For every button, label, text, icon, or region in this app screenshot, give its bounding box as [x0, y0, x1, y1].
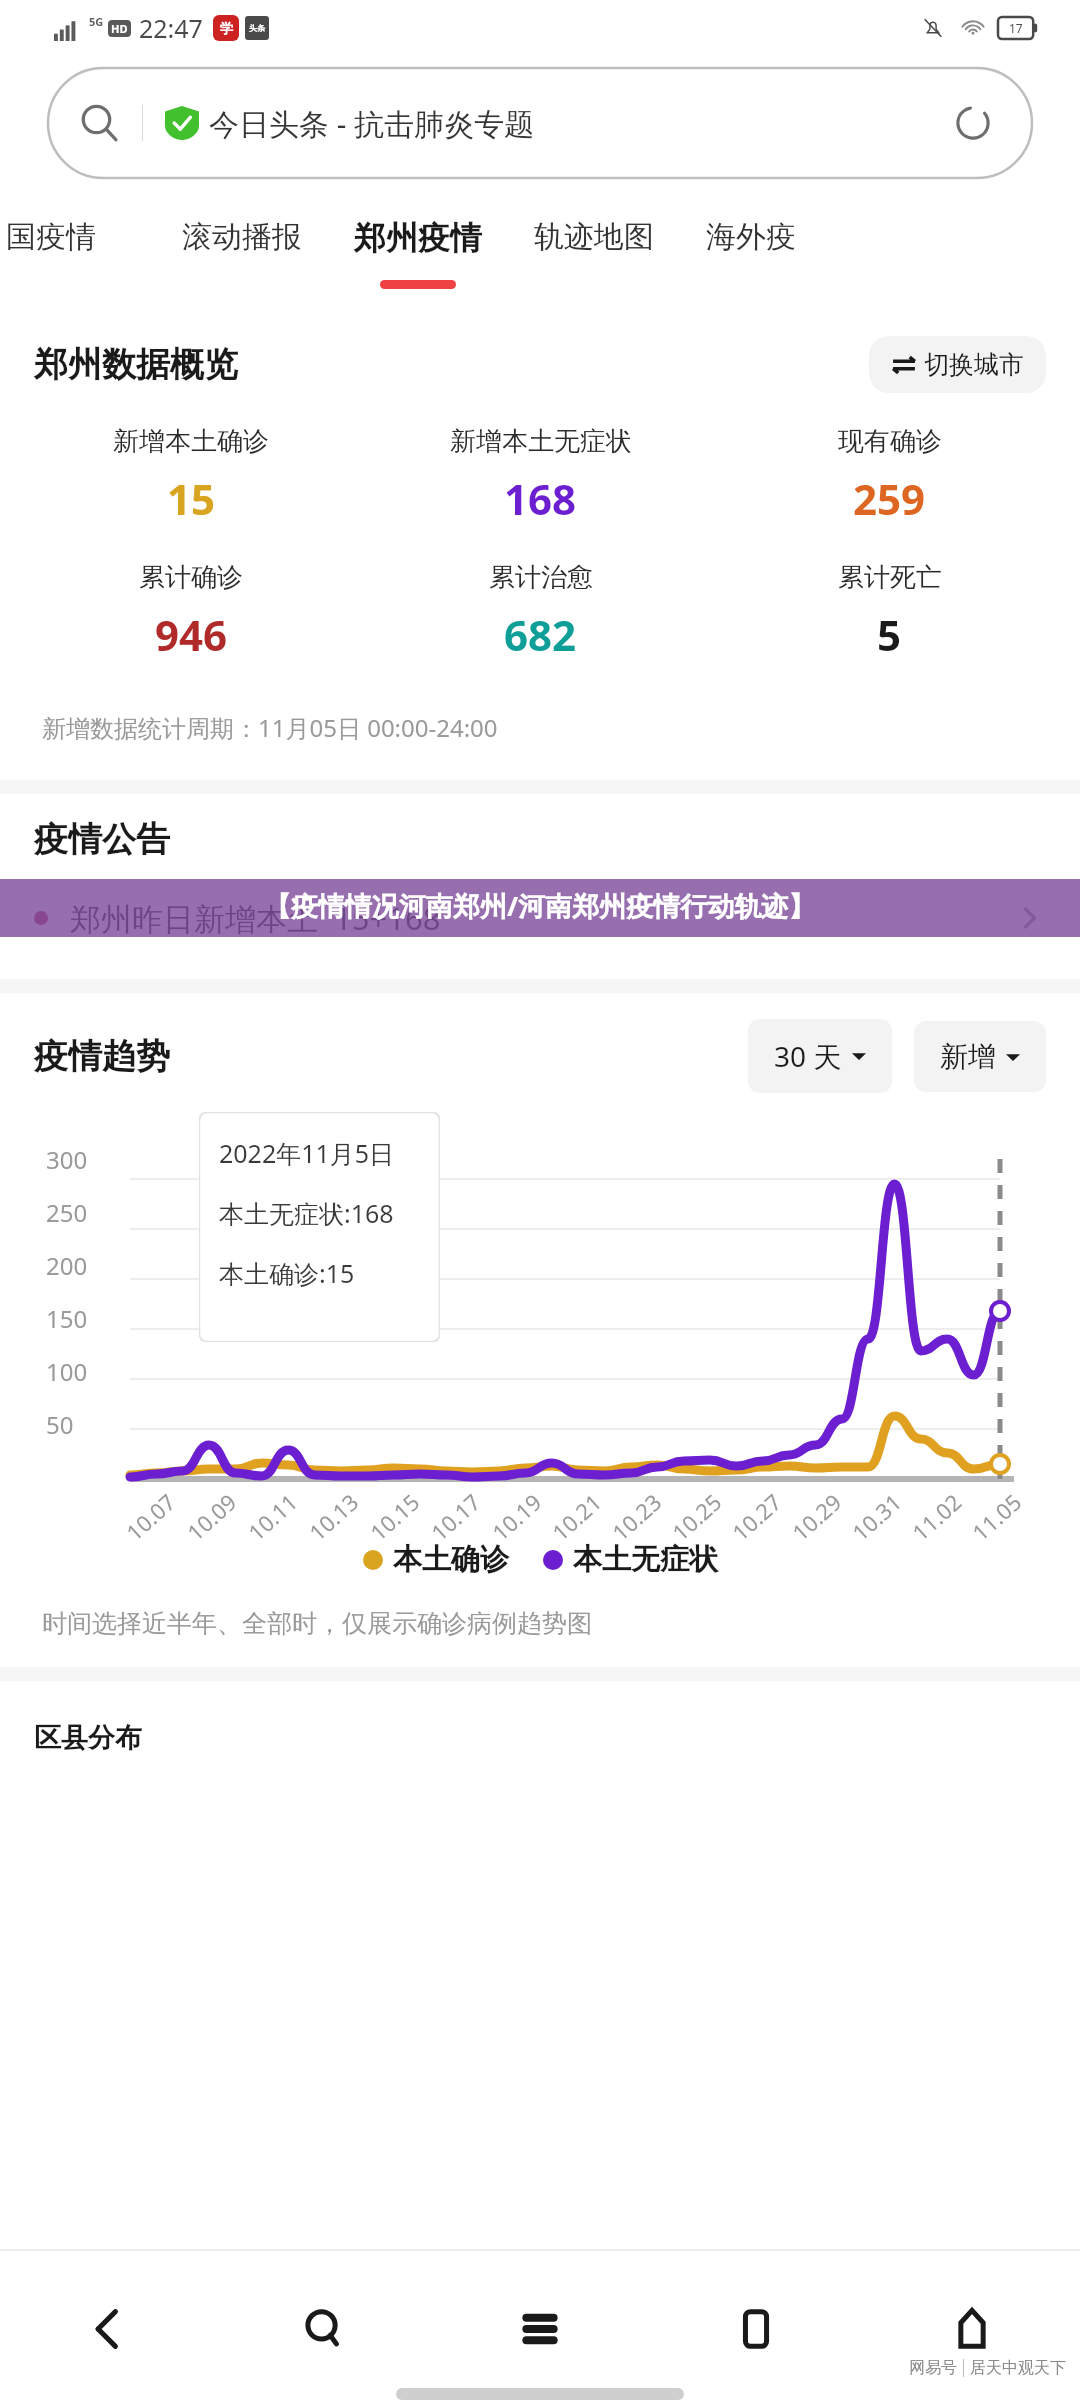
staticText: 10.23 — [605, 1486, 668, 1547]
staticText: 682 — [504, 606, 577, 663]
button[interactable]: 30 天 — [748, 1019, 892, 1093]
staticText: 新增 — [940, 1039, 996, 1074]
button[interactable]: Menu — [432, 2284, 648, 2374]
staticText: 居天中观天下 — [970, 2358, 1066, 2378]
button[interactable]: 郑州昨日新增本土 15+168 — [0, 883, 1080, 953]
button[interactable]: Back — [0, 2284, 216, 2374]
staticText: 300 — [46, 1143, 88, 1176]
staticText: 10.09 — [180, 1486, 243, 1547]
staticText: 新增本土确诊 — [113, 425, 269, 458]
staticText: 时间选择近半年、全部时，仅展示确诊病例趋势图 — [42, 1608, 592, 1639]
staticText: 168 — [504, 470, 577, 527]
staticText: HD — [111, 21, 128, 36]
staticText: 150 — [46, 1302, 88, 1335]
staticText: 今日头条 - 抗击肺炎专题 — [209, 103, 535, 144]
button[interactable]: 累计确诊 — [16, 561, 366, 663]
button[interactable]: 新增本土无症状 — [366, 425, 715, 527]
button[interactable]: 轨迹地图 — [534, 218, 654, 278]
button[interactable]: 本土无症状 — [539, 1537, 722, 1582]
staticText: 10.25 — [665, 1486, 728, 1547]
staticText: 【疫情情况河南郑州/河南郑州疫情行动轨迹】 — [264, 887, 816, 924]
staticText: 本土无症状:168 — [219, 1196, 394, 1230]
staticText: 15 — [167, 470, 216, 527]
staticText: 国疫情 — [6, 218, 96, 256]
staticText: 累计确诊 — [139, 561, 243, 594]
button[interactable]: 滚动播报 — [182, 218, 302, 278]
staticText: 10.31 — [845, 1486, 908, 1547]
staticText: 现有确诊 — [838, 425, 942, 458]
staticText: 10.11 — [241, 1486, 304, 1547]
other: More — [1014, 902, 1046, 934]
staticText: 2022年11月5日 — [219, 1136, 395, 1170]
button[interactable]: 海外疫 — [706, 218, 796, 278]
button[interactable]: 现有确诊 — [715, 425, 1064, 527]
staticText: 10.29 — [785, 1486, 848, 1547]
staticText: 头条 — [249, 23, 265, 33]
staticText: 累计死亡 — [838, 561, 942, 594]
staticText: 10.17 — [424, 1486, 487, 1547]
staticText: 10.27 — [725, 1486, 788, 1547]
staticText: 259 — [853, 470, 926, 527]
staticText: 本土确诊:15 — [219, 1256, 355, 1290]
staticText: 本土无症状 — [573, 1541, 718, 1578]
staticText: 海外疫 — [706, 218, 796, 256]
staticText: 郑州疫情 — [354, 218, 482, 258]
staticText: 5G — [89, 14, 104, 29]
button[interactable]: 累计治愈 — [366, 561, 715, 663]
staticText: 50 — [46, 1408, 74, 1441]
staticText: 200 — [46, 1249, 88, 1282]
staticText: 郑州昨日新增本土 15+168 — [70, 897, 441, 939]
staticText: 新增数据统计周期：11月05日 00:00-24:00 — [42, 711, 498, 744]
staticText: 11.02 — [905, 1486, 968, 1547]
button[interactable]: 国疫情 — [6, 218, 96, 278]
staticText: 网易号 — [909, 2358, 957, 2378]
staticText: 切换城市 — [924, 349, 1024, 380]
staticText: 本土确诊 — [393, 1541, 509, 1578]
staticText: 250 — [46, 1196, 88, 1229]
staticText: 郑州数据概览 — [34, 343, 238, 386]
staticText: 疫情趋势 — [34, 1035, 170, 1078]
staticText: 10.19 — [485, 1486, 548, 1547]
staticText: 10.21 — [545, 1486, 608, 1547]
staticText: 30 天 — [774, 1037, 842, 1075]
button[interactable]: 本土确诊 — [359, 1537, 513, 1582]
staticText: 学 — [220, 20, 233, 36]
button[interactable]: Home — [864, 2284, 1080, 2374]
button[interactable]: 切换城市 — [869, 336, 1046, 393]
button[interactable]: 今日头条 - 抗击肺炎专题 — [48, 68, 1032, 178]
staticText: 滚动播报 — [182, 218, 302, 256]
button[interactable]: Tabs — [648, 2284, 864, 2374]
button[interactable]: 新增 — [914, 1021, 1046, 1092]
button[interactable]: 累计死亡 — [715, 561, 1064, 663]
staticText: 5 — [877, 606, 902, 663]
staticText: 累计治愈 — [489, 561, 593, 594]
button[interactable]: 新增本土确诊 — [16, 425, 366, 527]
button[interactable]: 郑州疫情 — [354, 218, 482, 289]
staticText: 100 — [46, 1355, 88, 1388]
button[interactable]: Search — [216, 2284, 432, 2374]
staticText: 10.07 — [119, 1486, 182, 1547]
staticText: 10.13 — [302, 1486, 365, 1547]
button[interactable]: Refresh — [944, 94, 1002, 152]
staticText: 10.15 — [363, 1486, 426, 1547]
staticText: 区县分布 — [34, 1721, 142, 1755]
staticText: 22:47 — [139, 11, 203, 45]
staticText: 新增本土无症状 — [450, 425, 632, 458]
staticText: 946 — [155, 606, 228, 663]
staticText: 疫情公告 — [34, 818, 170, 861]
staticText: 17 — [1009, 20, 1023, 36]
staticText: 轨迹地图 — [534, 218, 654, 256]
staticText: 11.05 — [965, 1486, 1028, 1547]
